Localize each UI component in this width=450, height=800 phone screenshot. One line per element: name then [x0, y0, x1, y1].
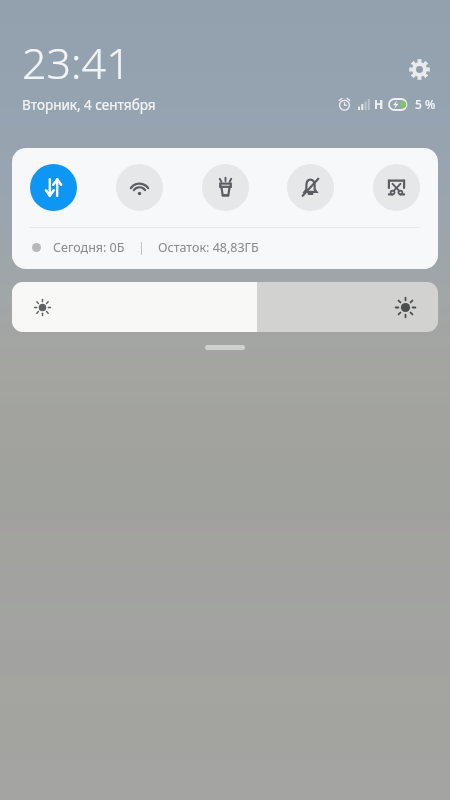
staticText: H [374, 96, 384, 112]
staticText: 23:41 [22, 33, 131, 92]
button[interactable]: Flashlight [202, 164, 249, 211]
button[interactable]: Screenshot [373, 164, 420, 211]
button[interactable]: Brightness [12, 282, 438, 332]
button[interactable] [205, 345, 245, 350]
button[interactable]: Settings [402, 52, 436, 86]
button[interactable]: Wi-Fi [116, 164, 163, 211]
staticText: | [138, 239, 145, 256]
staticText: Остаток: 48,83ГБ [158, 239, 259, 256]
button[interactable]: Mobile data [30, 164, 77, 211]
staticText: 5 % [415, 96, 436, 112]
button[interactable]: Silent mode [287, 164, 334, 211]
staticText: Сегодня: 0Б [53, 239, 125, 256]
staticText: Вторник, 4 сентября [22, 96, 156, 114]
